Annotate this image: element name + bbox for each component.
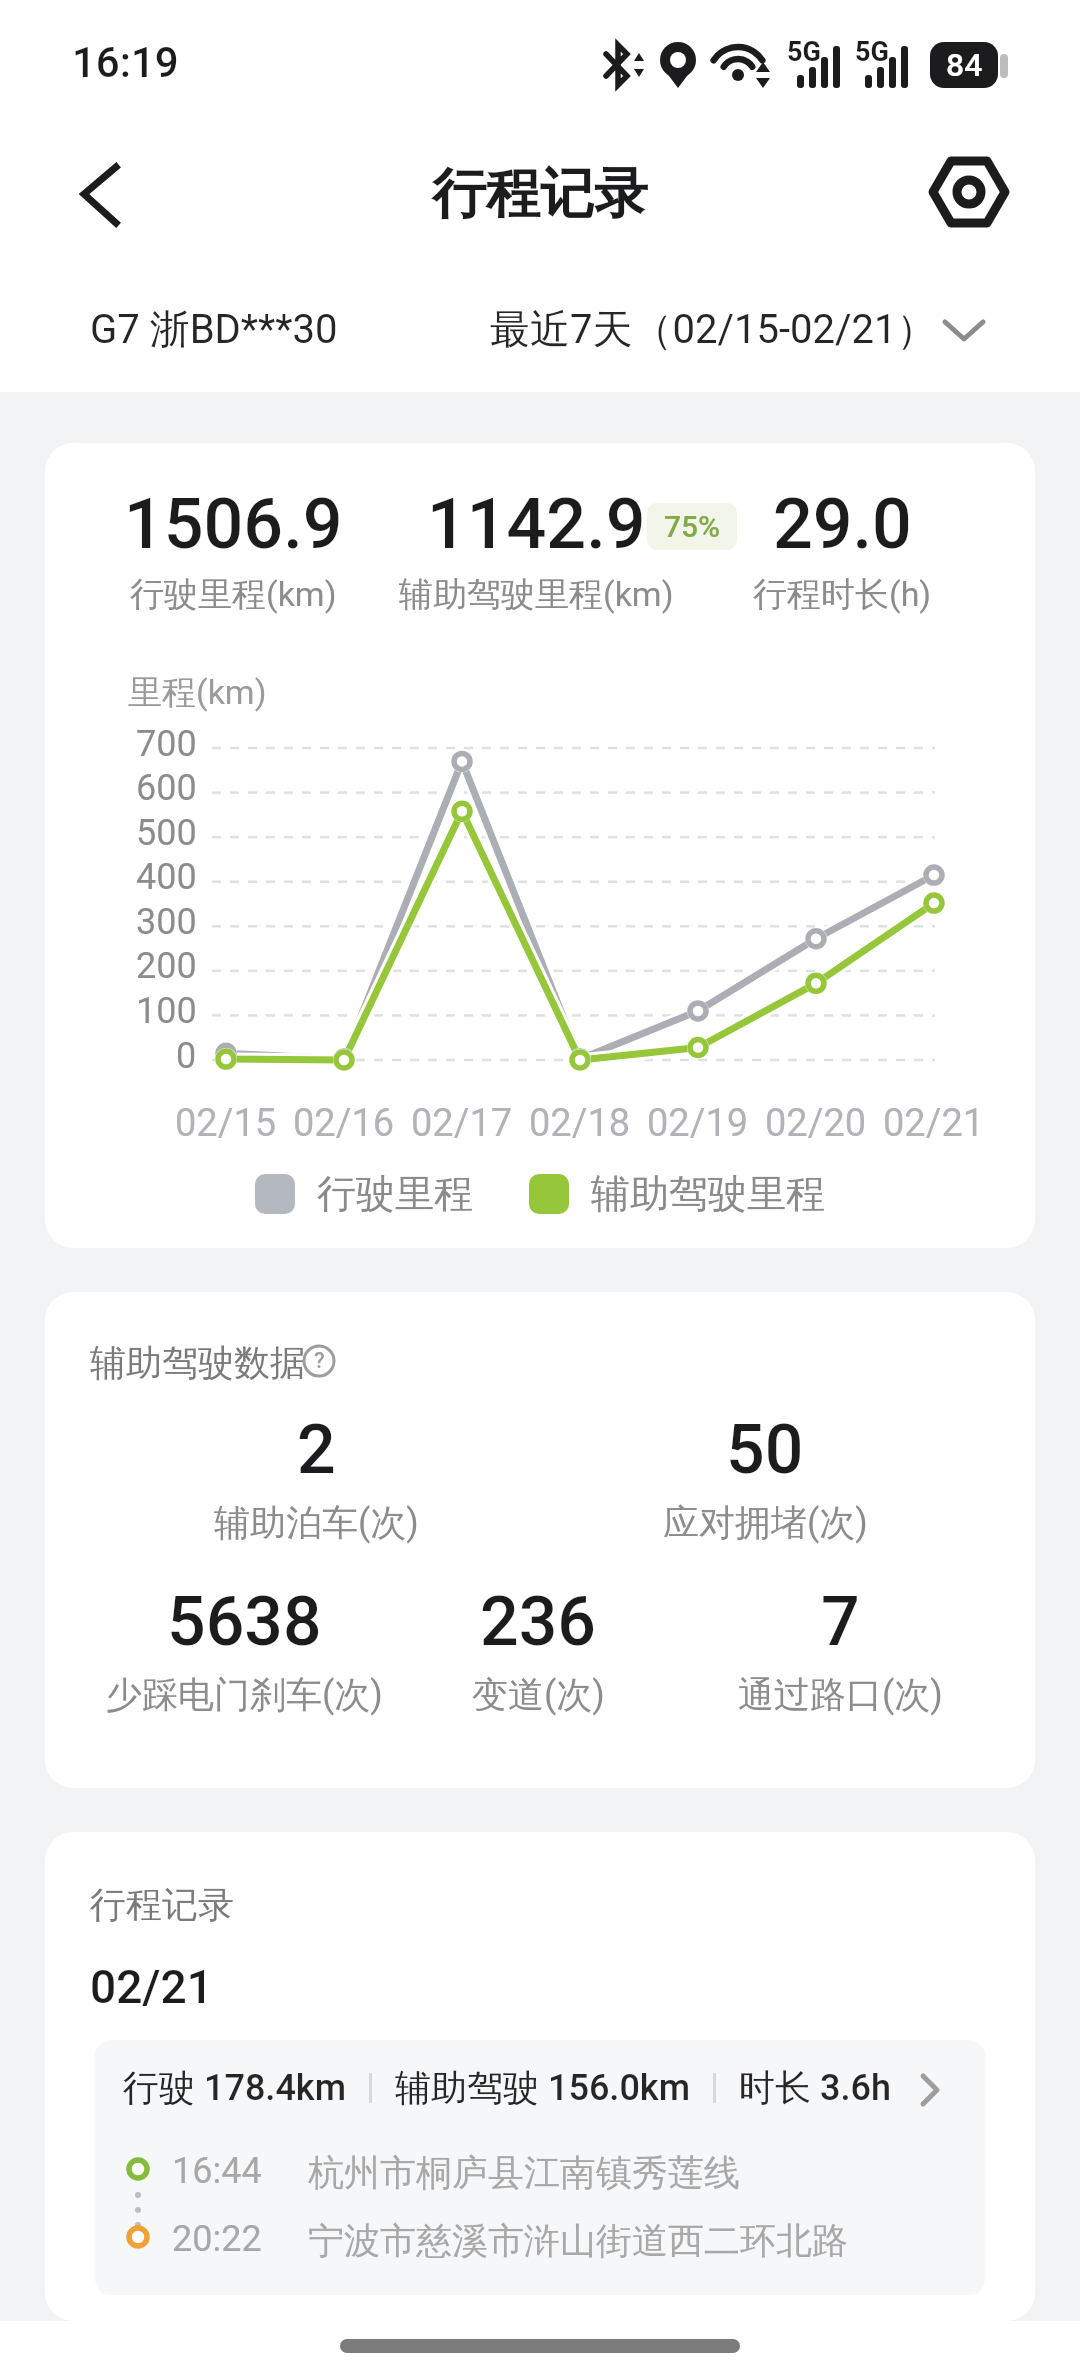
button[interactable]: 行驶 178.4km	[95, 2040, 985, 2295]
staticText: 7	[821, 1582, 860, 1662]
staticText: 宁波市慈溪市浒山街道西二环北路	[308, 2218, 848, 2263]
staticText: 400	[136, 856, 197, 898]
staticText: 时长 3.6h	[739, 2065, 891, 2110]
staticText: 236	[480, 1582, 596, 1662]
staticText: 5G	[787, 36, 821, 68]
button[interactable]	[60, 150, 150, 240]
staticText: 20:22	[172, 2218, 262, 2260]
button[interactable]: ?	[301, 1343, 337, 1379]
staticText: 行驶里程	[317, 1169, 473, 1218]
staticText: 5G	[855, 36, 889, 68]
staticText: 辅助驾驶数据	[90, 1340, 306, 1385]
staticText: 300	[136, 901, 197, 943]
staticText: 行程记录	[432, 160, 648, 228]
staticText: 里程(km)	[128, 671, 267, 714]
button[interactable]: 最近7天（02/15-02/21）	[470, 290, 1010, 370]
button[interactable]: G7 浙BD***30	[72, 290, 320, 370]
button[interactable]	[925, 148, 1015, 238]
staticText: 辅助驾驶 156.0km	[395, 2065, 690, 2110]
staticText: 行驶 178.4km	[123, 2065, 346, 2110]
staticText: 辅助驾驶里程	[591, 1169, 825, 1218]
staticText: 行驶里程(km)	[130, 573, 337, 616]
staticText: 最近7天（02/15-02/21）	[490, 304, 937, 354]
staticText: 1506.9	[124, 483, 343, 565]
staticText: 2	[297, 1410, 336, 1490]
staticText: 500	[136, 812, 197, 854]
staticText: 02/20	[765, 1101, 867, 1146]
staticText: 行程记录	[90, 1882, 234, 1927]
staticText: 200	[136, 945, 197, 987]
staticText: 5638	[167, 1582, 322, 1662]
staticText: G7 浙BD***30	[90, 304, 338, 354]
staticText: 杭州市桐庐县江南镇秀莲线	[308, 2150, 740, 2195]
staticText: 辅助泊车(次)	[214, 1500, 419, 1545]
staticText: 02/18	[529, 1101, 631, 1146]
staticText: 02/16	[293, 1101, 395, 1146]
staticText: 02/17	[411, 1101, 513, 1146]
staticText: 0	[176, 1035, 197, 1077]
staticText: 02/21	[883, 1101, 985, 1146]
staticText: 29.0	[773, 483, 912, 565]
staticText: 应对拥堵(次)	[663, 1500, 868, 1545]
staticText: 700	[136, 723, 197, 765]
staticText: 02/15	[175, 1101, 277, 1146]
staticText: 16:19	[72, 38, 179, 87]
staticText: 50	[726, 1410, 804, 1490]
staticText: 02/21	[90, 1960, 213, 2014]
staticText: 1142.9	[427, 483, 646, 565]
staticText: 84	[946, 46, 983, 84]
staticText: 100	[136, 990, 197, 1032]
staticText: 少踩电门刹车(次)	[106, 1672, 383, 1717]
staticText: 通过路口(次)	[738, 1672, 943, 1717]
staticText: 16:44	[172, 2150, 262, 2192]
staticText: ?	[314, 1348, 325, 1374]
staticText: 辅助驾驶里程(km)	[399, 573, 674, 616]
staticText: 02/19	[647, 1101, 749, 1146]
staticText: 变道(次)	[472, 1672, 605, 1717]
staticText: 600	[136, 767, 197, 809]
staticText: 75%	[664, 509, 721, 544]
staticText: 行程时长(h)	[753, 573, 932, 616]
